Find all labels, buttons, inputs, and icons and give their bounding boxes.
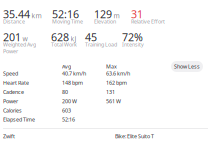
staticText: w: [22, 34, 27, 43]
staticText: Show Less: [174, 63, 200, 70]
staticText: 52:16: [52, 7, 79, 21]
staticText: 131: [106, 88, 115, 95]
staticText: Calories: [3, 107, 22, 114]
staticText: 561 W: [106, 98, 121, 105]
staticText: 80: [62, 88, 68, 95]
staticText: m: [113, 11, 119, 20]
staticText: Power: [3, 98, 18, 105]
staticText: Elapsed Time: [3, 116, 35, 123]
staticText: kJ: [70, 34, 76, 43]
staticText: Elevation: [94, 18, 116, 25]
button[interactable]: Show Less: [171, 61, 203, 72]
staticText: 129: [94, 7, 112, 21]
staticText: Max: [106, 63, 117, 70]
staticText: 201: [3, 30, 21, 44]
staticText: Total Work: [51, 41, 77, 48]
staticText: Relative Effort: [131, 18, 165, 25]
staticText: 200 W: [62, 98, 77, 105]
staticText: Avg: [62, 63, 71, 70]
staticText: 52:16: [62, 116, 75, 123]
staticText: Moving Time: [52, 18, 83, 25]
staticText: 148 bpm: [62, 79, 83, 86]
staticText: 72%: [122, 30, 143, 44]
staticText: 45: [85, 30, 97, 44]
staticText: Distance: [3, 18, 25, 25]
staticText: 35.44: [3, 7, 30, 21]
staticText: Training Load: [85, 41, 117, 48]
staticText: Cadence: [3, 88, 24, 95]
staticText: km: [31, 11, 41, 20]
staticText: 40.7 km/h: [62, 70, 86, 77]
staticText: Weighted Avg Power: [3, 41, 36, 55]
staticText: 63.6 km/h: [106, 70, 130, 77]
staticText: Speed: [3, 70, 18, 77]
staticText: 31: [131, 7, 143, 21]
staticText: 628: [51, 30, 69, 44]
staticText: Intensity: [122, 41, 144, 48]
staticText: Zwift: [3, 133, 15, 140]
staticText: 603: [62, 107, 71, 114]
staticText: 162 bpm: [106, 79, 127, 86]
staticText: Bike: Elite Suito T: [115, 133, 154, 140]
staticText: Heart Rate: [3, 79, 29, 86]
